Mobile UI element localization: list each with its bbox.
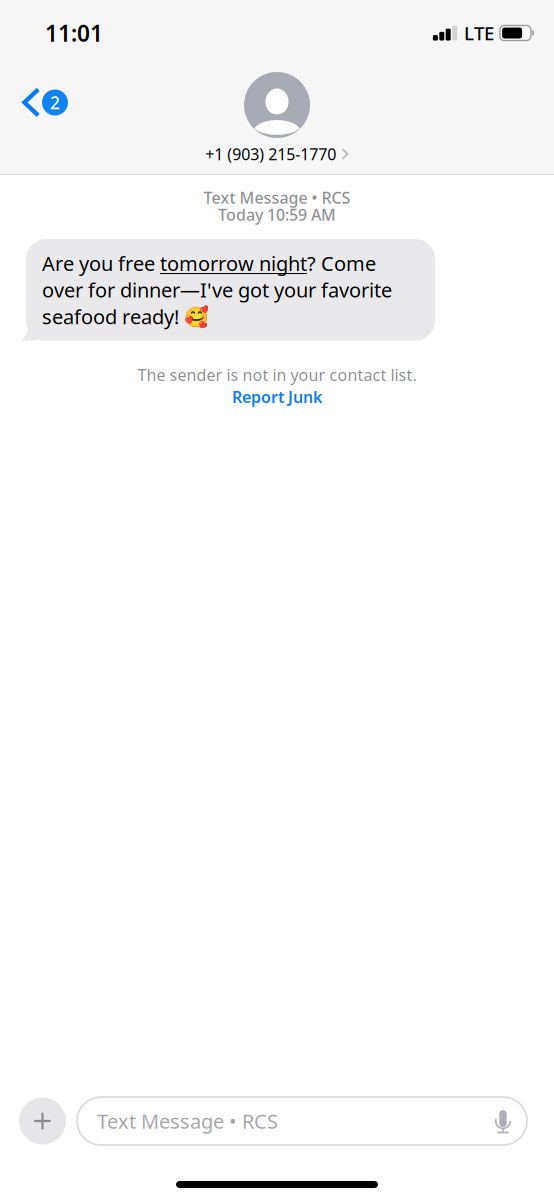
button[interactable]: Text Message • RCS: [77, 1097, 527, 1145]
button[interactable]: Add attachment: [19, 1097, 66, 1144]
button[interactable]: Report Junk: [232, 389, 322, 405]
staticText: 11:01: [45, 18, 103, 48]
staticText: Text Message • RCS: [97, 1108, 278, 1134]
staticText: Are you free tomorrow night? Come over f…: [42, 250, 392, 330]
staticText: 2: [50, 91, 60, 114]
staticText: Text Message • RCS: [203, 187, 350, 208]
button[interactable]: Back: [0, 62, 82, 129]
button[interactable]: +1 (903) 215-1770: [205, 145, 349, 163]
staticText: +1 (903) 215-1770: [205, 143, 336, 165]
staticText: Report Junk: [232, 386, 322, 407]
staticText: Today 10:59 AM: [218, 204, 336, 225]
staticText: LTE: [464, 21, 494, 45]
staticText: The sender is not in your contact list.: [137, 364, 416, 385]
